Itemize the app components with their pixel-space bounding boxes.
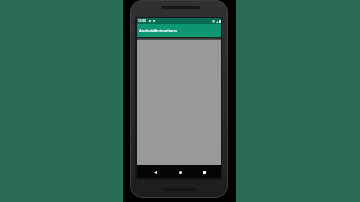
- staticText: AndroidAnimations: [139, 28, 177, 34]
- staticText: 12:30: [138, 19, 147, 23]
- button[interactable]: Home: [174, 166, 186, 178]
- button[interactable]: AndroidAnimations: [137, 24, 221, 37]
- button[interactable]: Recent apps: [198, 166, 210, 178]
- button[interactable]: Back: [149, 166, 161, 178]
